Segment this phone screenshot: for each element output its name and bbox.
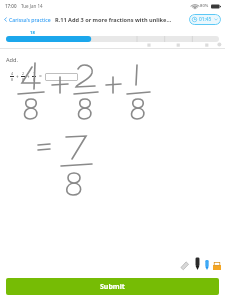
staticText: + xyxy=(27,74,30,80)
staticText: Submit xyxy=(100,282,125,292)
staticText: Add. xyxy=(6,56,18,64)
button[interactable] xyxy=(45,73,78,81)
button[interactable]: 01:45 xyxy=(189,14,221,25)
staticText: R.11 Add 3 or more fractions with unlike… xyxy=(55,16,172,24)
staticText: Carissa's practice xyxy=(9,16,51,23)
staticText: Tue Jan 14 xyxy=(21,3,43,9)
button[interactable]: Highlighter xyxy=(213,261,221,270)
staticText: 80% xyxy=(200,3,209,9)
staticText: = xyxy=(39,73,42,80)
button[interactable]: Blue pen xyxy=(204,259,210,270)
staticText: 01:45 xyxy=(199,16,212,23)
staticText: 8 xyxy=(22,77,25,82)
staticText: 18 xyxy=(30,30,35,36)
button[interactable]: Eraser xyxy=(180,259,191,270)
staticText: 17:00 xyxy=(5,3,17,9)
button[interactable]: Submit xyxy=(6,278,219,295)
staticText: 8 xyxy=(11,77,14,82)
button[interactable]: Carissa's practice xyxy=(3,16,51,23)
button[interactable]: Pencil xyxy=(194,256,201,270)
staticText: + xyxy=(16,74,19,80)
staticText: 8 xyxy=(33,77,36,82)
staticText: 1 xyxy=(33,71,36,76)
staticText: 4 xyxy=(11,71,14,76)
staticText: 2 xyxy=(22,71,25,76)
